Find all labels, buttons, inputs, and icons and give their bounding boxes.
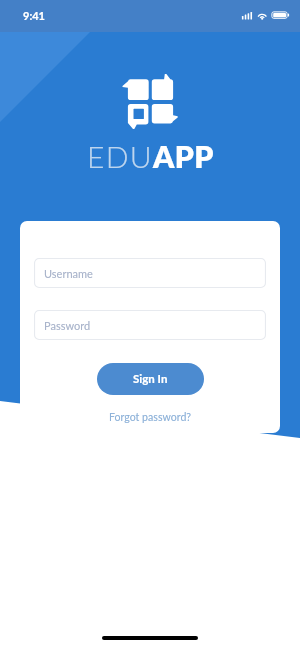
button[interactable]: Username bbox=[34, 258, 266, 288]
staticText: Password bbox=[44, 319, 91, 332]
button[interactable]: Forgot password? bbox=[103, 409, 198, 426]
button[interactable]: Sign In bbox=[97, 363, 204, 395]
button[interactable]: Password bbox=[34, 310, 266, 340]
staticText: Forgot password? bbox=[109, 411, 192, 424]
staticText: EDU bbox=[87, 138, 153, 174]
staticText: 9:41 bbox=[23, 9, 45, 22]
staticText: Sign In bbox=[133, 372, 168, 386]
staticText: APP bbox=[153, 138, 214, 174]
staticText: Username bbox=[44, 267, 93, 280]
